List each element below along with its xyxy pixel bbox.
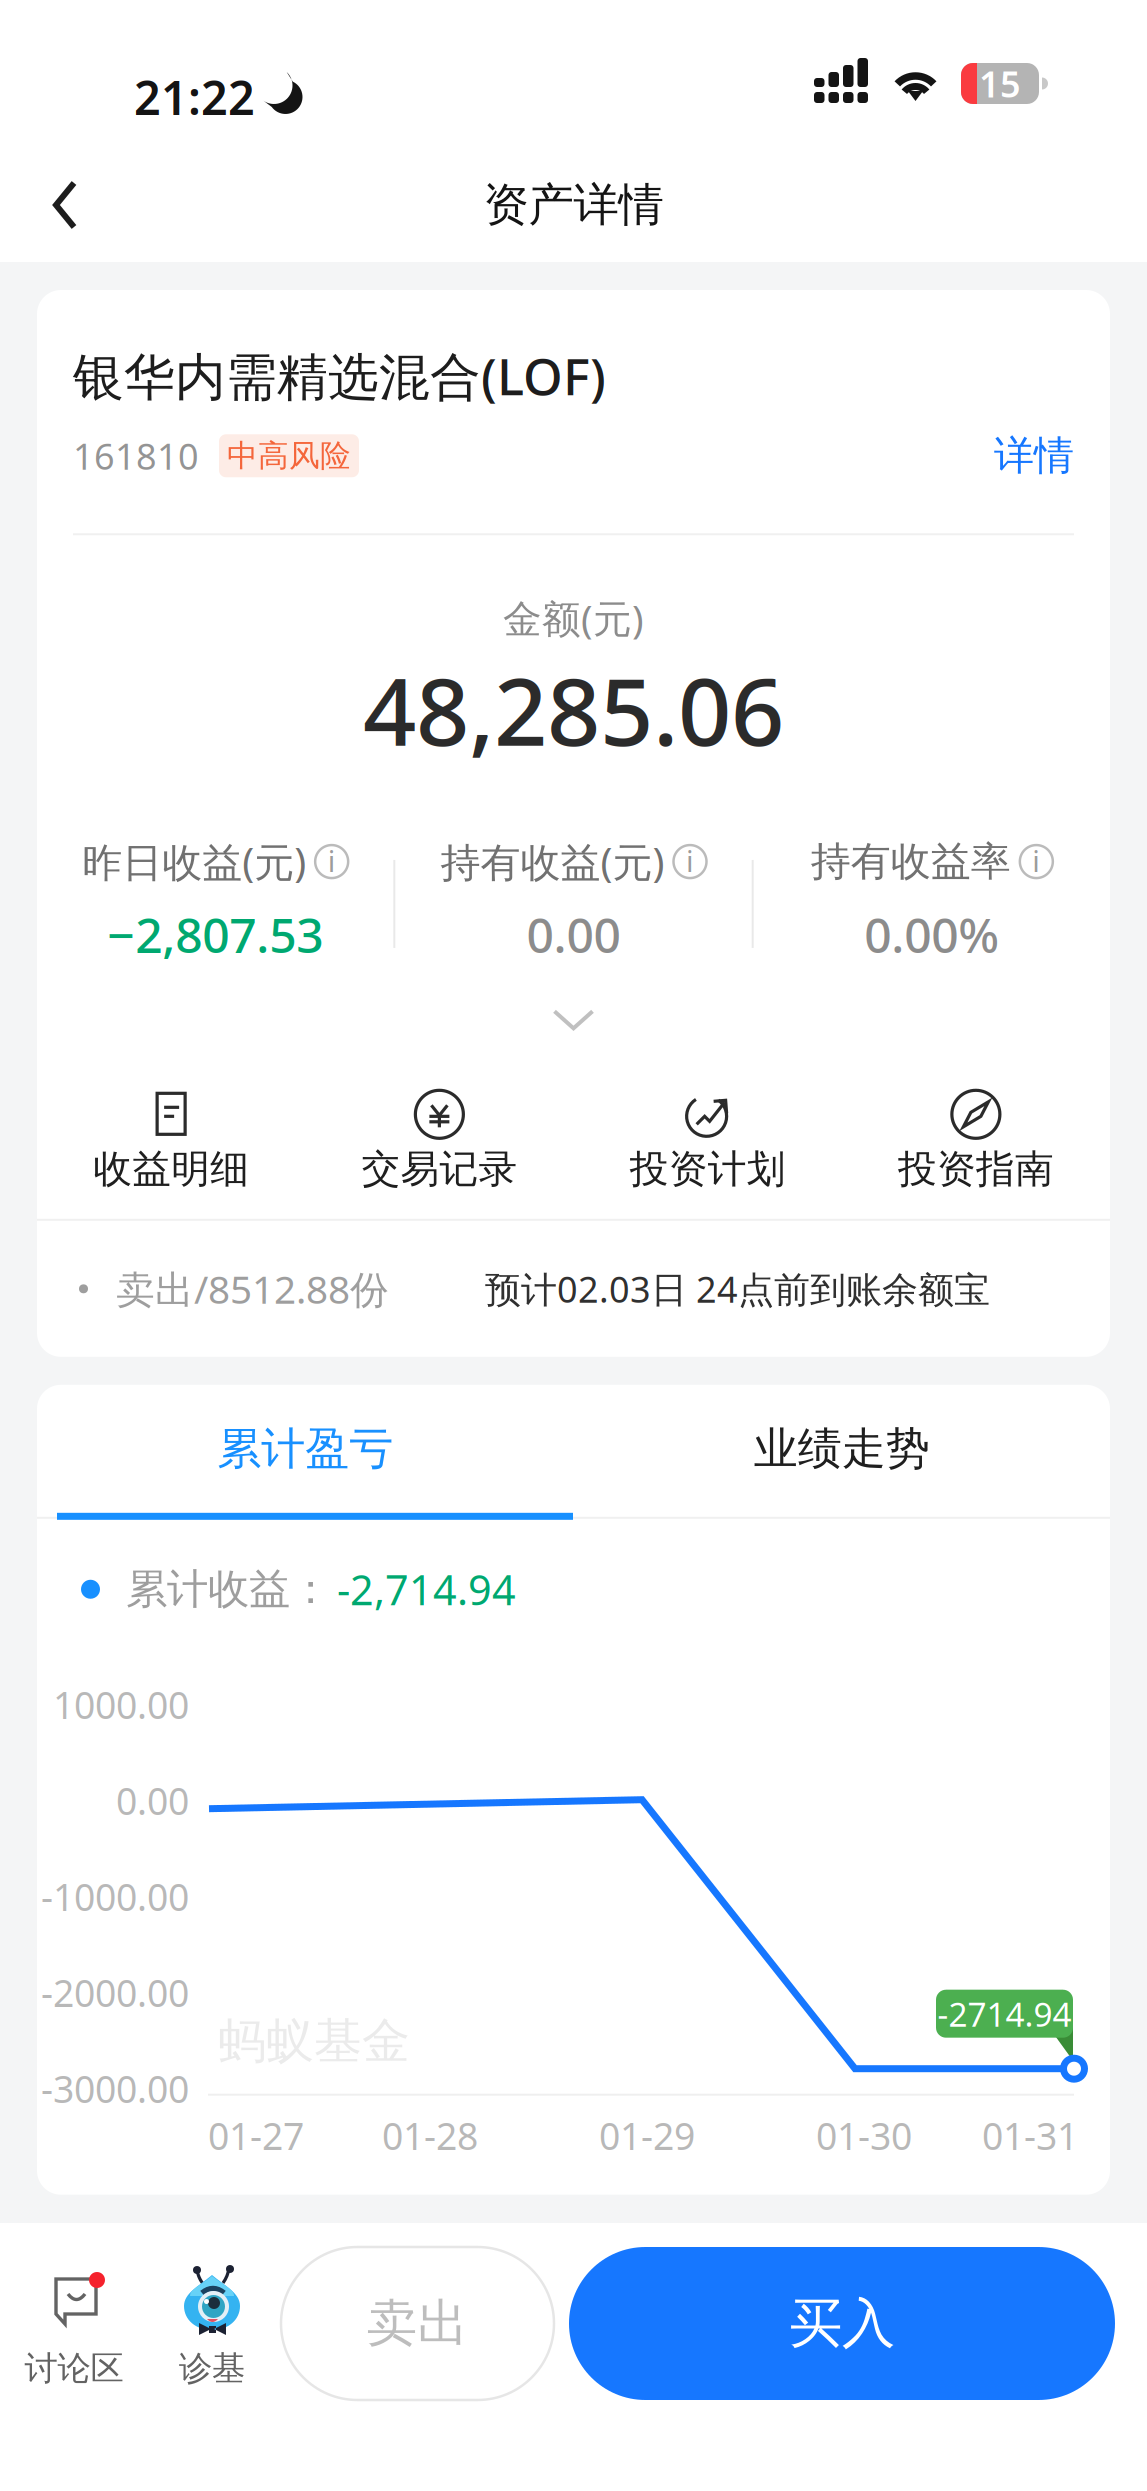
staticText: 诊基 <box>179 2348 245 2389</box>
staticText: 预计02.03日 24点前到账余额宝 <box>485 1265 990 1313</box>
staticText: 卖出 <box>366 2292 468 2355</box>
staticText: -1000.00 <box>41 1872 189 1921</box>
staticText: 投资指南 <box>898 1145 1054 1193</box>
button[interactable]: 诊基 <box>147 2246 277 2374</box>
staticText: -2714.94 <box>937 1992 1071 2036</box>
staticText: 收益明细 <box>93 1145 249 1193</box>
staticText: -3000.00 <box>41 2064 189 2113</box>
staticText: 蚂蚁基金 <box>218 2012 410 2071</box>
button[interactable]: 交易记录 <box>305 1084 573 1199</box>
staticText: 资产详情 <box>483 177 663 233</box>
staticText: 中高风险 <box>227 437 351 475</box>
staticText: 详情 <box>994 431 1074 480</box>
staticText: 0.00% <box>864 903 999 966</box>
staticText: 01-30 <box>816 2111 912 2160</box>
button[interactable]: Back <box>0 148 118 262</box>
staticText: 金额(元) <box>503 592 644 644</box>
staticText: 讨论区 <box>24 2348 123 2389</box>
staticText: 0.00 <box>526 903 620 966</box>
staticText: 银华内需精选混合(LOF) <box>73 342 606 409</box>
staticText: 昨日收益(元) <box>82 835 306 888</box>
staticText: 161810 <box>73 432 199 480</box>
staticText: 01-28 <box>382 2111 478 2160</box>
staticText: 买入 <box>789 2291 895 2356</box>
staticText: i <box>1032 841 1040 880</box>
staticText: 48,285.06 <box>363 648 784 771</box>
staticText: 累计收益： <box>126 1564 331 1615</box>
staticText: 01-29 <box>599 2111 695 2160</box>
staticText: 累计盈亏 <box>217 1422 393 1476</box>
button[interactable]: 投资指南 <box>842 1084 1110 1199</box>
staticText: i <box>328 841 336 880</box>
staticText: −2,807.53 <box>107 903 323 966</box>
staticText: i <box>686 841 694 880</box>
staticText: 卖出/8512.88份 <box>116 1263 389 1314</box>
button[interactable]: 投资计划 <box>573 1084 842 1199</box>
button[interactable]: Expand <box>511 993 635 1046</box>
staticText: 业绩走势 <box>754 1422 930 1476</box>
staticText: 01-27 <box>208 2111 304 2160</box>
staticText: 持有收益(元) <box>440 835 664 888</box>
staticText: 交易记录 <box>361 1145 517 1193</box>
button[interactable]: 累计盈亏 <box>37 1385 573 1513</box>
staticText: -2,714.94 <box>337 1562 516 1617</box>
staticText: -2000.00 <box>41 1968 189 2017</box>
button[interactable]: 业绩走势 <box>573 1385 1110 1513</box>
button[interactable]: 详情 <box>954 425 1074 486</box>
button[interactable]: 买入 <box>569 2247 1115 2400</box>
staticText: 0.00 <box>116 1776 189 1825</box>
staticText: 01-31 <box>982 2111 1078 2160</box>
staticText: 15 <box>979 60 1021 107</box>
button[interactable]: 收益明细 <box>37 1084 305 1199</box>
staticText: 投资计划 <box>630 1145 786 1193</box>
staticText: 21:22 <box>134 66 255 128</box>
button[interactable]: 讨论区 <box>0 2246 148 2374</box>
staticText: 1000.00 <box>53 1680 189 1729</box>
button[interactable]: 卖出 <box>281 2247 554 2400</box>
staticText: 持有收益率 <box>811 837 1011 886</box>
